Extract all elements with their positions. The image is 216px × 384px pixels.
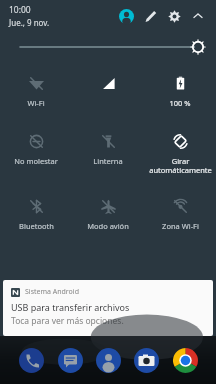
staticText: Toca para ver más opciones.: [11, 315, 124, 327]
staticText: Girar automáticamente: [149, 156, 212, 175]
staticText: No molestar: [14, 156, 58, 166]
button[interactable]: Girar automáticamente: [144, 126, 216, 179]
button[interactable]: Phone: [16, 345, 46, 375]
button[interactable]: Settings: [162, 4, 186, 28]
button[interactable]: Edit: [138, 4, 162, 28]
button[interactable]: Camera: [131, 345, 161, 375]
button[interactable]: Chrome: [170, 345, 200, 375]
button[interactable]: No molestar: [0, 126, 72, 170]
button[interactable]: Messages: [55, 345, 85, 375]
staticText: Sistema Android: [25, 287, 79, 297]
button[interactable]: Collapse: [186, 4, 210, 28]
staticText: USB para transferir archivos: [11, 301, 130, 313]
button[interactable]: Bluetooth: [0, 191, 72, 235]
staticText: Jue., 9 nov.: [9, 17, 50, 28]
staticText: 10:00: [9, 4, 31, 16]
button[interactable]: Signal: [72, 68, 144, 111]
staticText: 100 %: [169, 98, 191, 108]
staticText: Modo avión: [87, 221, 129, 231]
button[interactable]: Contacts: [93, 345, 123, 375]
button[interactable]: Linterna: [72, 126, 144, 170]
staticText: Bluetooth: [19, 221, 54, 231]
button[interactable]: Brightness: [0, 32, 216, 62]
button[interactable]: User: [114, 4, 138, 28]
button[interactable]: Zona Wi-Fi: [144, 191, 216, 235]
button[interactable]: Wi-Fi: [0, 68, 72, 112]
staticText: Linterna: [93, 156, 123, 166]
staticText: Zona Wi-Fi: [162, 221, 199, 231]
staticText: Wi-Fi: [27, 98, 45, 108]
button[interactable]: Modo avión: [72, 191, 144, 235]
button[interactable]: 100 %: [144, 68, 216, 112]
button[interactable]: Sistema Android: [3, 280, 213, 336]
